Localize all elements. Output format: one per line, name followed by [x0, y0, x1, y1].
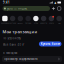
button[interactable]: Ещё: [55, 16, 63, 24]
button[interactable]: Погода: [24, 16, 32, 24]
button[interactable]: Купить билет: [39, 41, 61, 46]
button[interactable]: Новости: [40, 16, 48, 24]
staticText: ya.ru — Яндекс: [7, 7, 27, 10]
button[interactable]: Маркет: [16, 16, 24, 24]
button[interactable]: Tabs: [57, 6, 61, 11]
staticText: Частное: [9, 22, 16, 24]
button[interactable]: Частное: [9, 16, 17, 24]
staticText: Купить билет: [41, 42, 60, 46]
staticText: Игры: [34, 22, 38, 24]
button[interactable]: Алиса: [47, 16, 55, 24]
staticText: ▲: [54, 1, 56, 4]
button[interactable]: New tab: [51, 6, 55, 11]
button[interactable]: Просмотр содержимого: [2, 56, 62, 62]
staticText: 9:41: [3, 1, 10, 4]
staticText: По устройству: [2, 36, 20, 40]
button[interactable]: Игры: [32, 16, 40, 24]
staticText: Мои транзакции: [2, 29, 37, 34]
staticText: Новости: [40, 22, 47, 24]
staticText: Закладки: [1, 22, 9, 24]
staticText: Мой банк 40 ₽: [2, 43, 24, 46]
button[interactable]: ya.ru — Яндекс: [2, 6, 50, 11]
button[interactable]: Закладки: [1, 16, 9, 24]
staticText: Маркет: [17, 22, 23, 24]
staticText: В закладках: [3, 51, 17, 55]
staticText: Алиса: [49, 22, 54, 24]
staticText: Просмотр содержимого: [4, 57, 38, 61]
staticText: Погода: [25, 22, 31, 24]
staticText: Ещё: [58, 22, 61, 24]
